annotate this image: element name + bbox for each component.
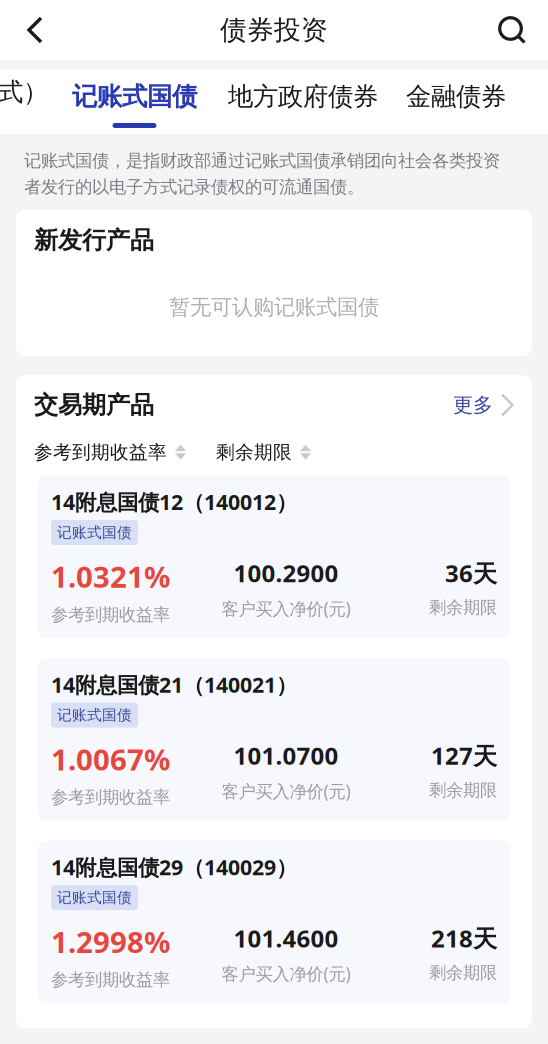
staticText: 地方政府债券 (228, 81, 378, 112)
staticText: 127天 (431, 740, 497, 771)
button[interactable]: 记账式国债 (72, 69, 197, 134)
staticText: 债券投资 (220, 14, 328, 46)
staticText: 客户买入净价(元) (221, 779, 350, 802)
staticText: 剩余期限 (429, 597, 497, 618)
staticText: 参考到期收益率 (34, 441, 167, 464)
staticText: 100.2900 (233, 557, 338, 589)
staticText: 客户买入净价(元) (221, 962, 350, 985)
staticText: 1.0321% (51, 557, 170, 596)
staticText: 剩余期限 (429, 962, 497, 983)
button[interactable]: 14附息国债12（140012） (38, 476, 510, 638)
staticText: 参考到期收益率 (51, 969, 170, 990)
button[interactable]: Search (498, 0, 548, 60)
staticText: 218天 (431, 922, 497, 954)
staticText: 记账式国债 (57, 706, 132, 724)
staticText: 剩余期限 (429, 779, 497, 801)
staticText: 记账式国债 (57, 523, 132, 541)
staticText: 交易期产品 (34, 390, 154, 420)
button[interactable]: 14附息国债29（140029） (38, 841, 510, 1003)
button[interactable]: 地方政府债券 (228, 69, 378, 134)
staticText: 36天 (445, 557, 497, 589)
staticText: 记账式国债 (72, 81, 197, 112)
staticText: 金融债券 (406, 81, 506, 112)
staticText: 子式） (0, 76, 48, 107)
staticText: 者发行的以电子方式记录债权的可流通国债。 (24, 176, 364, 198)
staticText: 记账式国债 (57, 889, 132, 907)
button[interactable]: 参考到期收益率 (34, 441, 186, 464)
staticText: 101.0700 (233, 740, 338, 771)
staticText: 1.2998% (51, 922, 170, 961)
staticText: 参考到期收益率 (51, 787, 170, 808)
staticText: 1.0067% (51, 740, 170, 779)
button[interactable]: 剩余期限 (216, 441, 311, 464)
staticText: 14附息国债21（140021） (51, 670, 297, 699)
button[interactable]: 更多 (453, 393, 514, 417)
button[interactable]: 金融债券 (406, 69, 506, 134)
button[interactable]: Back (0, 0, 70, 60)
button[interactable]: 14附息国债21（140021） (38, 658, 510, 821)
staticText: 暂无可认购记账式国债 (169, 294, 379, 320)
staticText: 新发行产品 (34, 226, 154, 255)
staticText: 101.4600 (233, 922, 338, 954)
staticText: 14附息国债29（140029） (51, 853, 297, 881)
staticText: 更多 (453, 393, 493, 417)
staticText: 剩余期限 (216, 441, 292, 464)
staticText: 参考到期收益率 (51, 604, 170, 625)
staticText: 记账式国债，是指财政部通过记账式国债承销团向社会各类投资 (24, 150, 500, 171)
staticText: 14附息国债12（140012） (51, 488, 297, 516)
staticText: 客户买入净价(元) (221, 597, 350, 620)
